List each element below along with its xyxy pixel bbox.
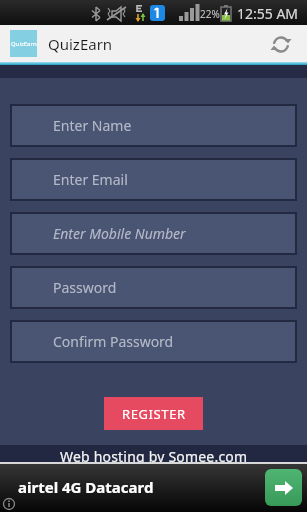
staticText: airtel 4G Datacard [18, 477, 154, 497]
staticText: Password [53, 278, 117, 297]
button[interactable] [265, 469, 302, 506]
button[interactable]: Confirm Password [10, 320, 297, 363]
staticText: REGISTER [122, 405, 186, 423]
staticText: Web hosting by Somee.com [60, 447, 248, 462]
staticText: 12:55 AM [237, 4, 299, 23]
staticText: QuizEarn [48, 34, 113, 54]
staticText: Enter Mobile Number [53, 224, 186, 243]
button[interactable]: Enter Name [10, 104, 297, 147]
staticText: Confirm Password [53, 332, 174, 351]
button[interactable]: REGISTER [104, 397, 203, 430]
staticText: 22% [200, 7, 220, 21]
staticText: QuizEarn [11, 40, 37, 48]
button[interactable] [269, 32, 293, 56]
button[interactable]: airtel 4G Datacard [0, 462, 307, 512]
button[interactable]: Enter Mobile Number [10, 212, 297, 255]
button[interactable]: Enter Email [10, 158, 297, 201]
staticText: Enter Email [53, 170, 128, 189]
staticText: Enter Name [53, 116, 132, 135]
button[interactable]: Password [10, 266, 297, 309]
